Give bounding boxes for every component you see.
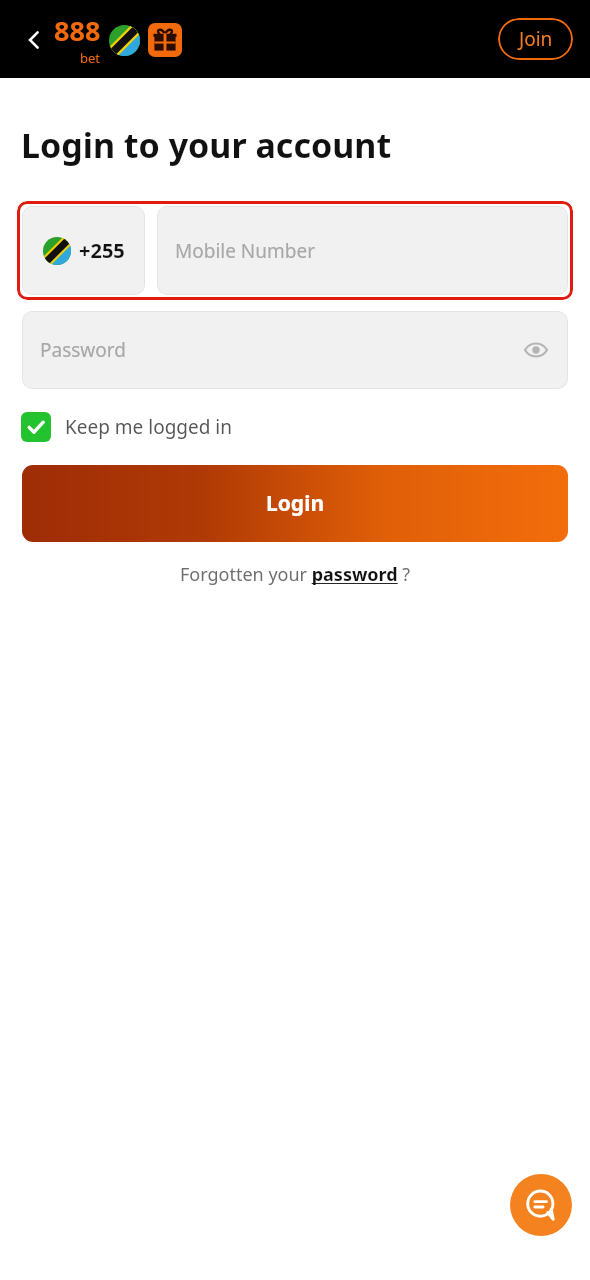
button[interactable]: +255 xyxy=(22,206,145,295)
button[interactable]: Login xyxy=(22,465,568,542)
staticText: Login xyxy=(266,489,325,518)
staticText: Keep me logged in xyxy=(65,414,232,440)
button[interactable]: Show password xyxy=(516,330,556,370)
button[interactable]: Forgotten your password ? xyxy=(180,562,411,587)
staticText: Join xyxy=(519,26,553,52)
button[interactable]: Tanzania xyxy=(108,24,140,56)
staticText: Forgotten your password ? xyxy=(180,562,411,587)
staticText: Mobile Number xyxy=(175,238,316,264)
staticText: Login to your account xyxy=(21,122,392,168)
button[interactable]: Password xyxy=(22,311,568,389)
button[interactable]: Chat support xyxy=(510,1174,572,1236)
button[interactable]: Join xyxy=(498,18,573,60)
button[interactable]: Promotions xyxy=(148,23,182,57)
staticText: +255 xyxy=(79,237,125,264)
staticText: bet xyxy=(80,49,101,67)
button[interactable]: Back xyxy=(16,22,52,58)
staticText: 888 xyxy=(54,12,101,49)
button[interactable]: Keep me logged in xyxy=(21,407,232,447)
staticText: Password xyxy=(40,337,126,363)
button[interactable]: Mobile Number xyxy=(157,206,568,295)
